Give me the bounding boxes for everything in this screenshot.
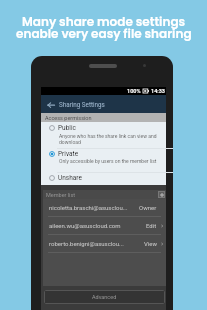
staticText: Private — [58, 150, 79, 158]
staticText: aileen.wu@asuscloud.com — [49, 222, 144, 229]
staticText: Owner — [139, 204, 157, 211]
staticText: 14:33 — [151, 88, 165, 94]
button[interactable]: Advanced — [44, 290, 165, 304]
button[interactable]: roberto.benigni@asusclou... — [43, 235, 166, 252]
button[interactable]: Add member — [158, 191, 165, 198]
staticText: roberto.benigni@asusclou... — [49, 240, 142, 247]
button[interactable]: aileen.wu@asuscloud.com — [43, 217, 166, 234]
staticText: enable very easy file sharing — [16, 25, 192, 42]
staticText: Anyone who has the share link can view a… — [59, 133, 157, 145]
staticText: Access permission — [45, 115, 92, 121]
button[interactable]: nicoletta.braschi@asusclou... — [43, 199, 166, 216]
button[interactable]: Public — [41, 121, 166, 134]
button[interactable]: Private — [41, 147, 166, 160]
staticText: Member list — [46, 192, 76, 198]
staticText: nicoletta.braschi@asusclou... — [49, 204, 137, 211]
staticText: Sharing Settings — [59, 101, 105, 108]
staticText: View — [144, 240, 157, 247]
button[interactable]: Unshare — [41, 171, 166, 184]
staticText: Unshare — [58, 174, 82, 182]
staticText: Many share mode settings — [22, 13, 186, 30]
button[interactable]: Back — [45, 99, 56, 110]
staticText: Edit — [146, 222, 157, 229]
staticText: Advanced — [92, 294, 117, 300]
staticText: 100% — [127, 88, 141, 94]
staticText: Only accessible by users on the member l… — [59, 158, 157, 164]
staticText: Public — [58, 124, 76, 132]
